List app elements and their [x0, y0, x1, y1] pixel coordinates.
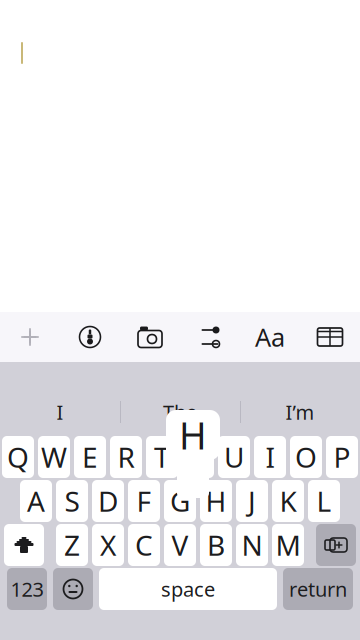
button[interactable]: Text format — [240, 312, 300, 362]
button[interactable]: E — [74, 436, 106, 478]
button[interactable]: J — [236, 480, 268, 522]
staticText: Aa — [255, 320, 285, 354]
staticText: I — [56, 399, 63, 425]
button[interactable]: F — [128, 480, 160, 522]
staticText: R — [117, 438, 134, 476]
button[interactable]: Q — [2, 436, 34, 478]
button[interactable]: X — [92, 524, 124, 566]
button[interactable]: O — [290, 436, 322, 478]
button[interactable]: G — [164, 480, 196, 522]
button[interactable]: space — [99, 568, 277, 610]
staticText: Q — [7, 438, 29, 476]
button[interactable]: B — [200, 524, 232, 566]
button[interactable]: C — [128, 524, 160, 566]
staticText: space — [161, 576, 215, 602]
button[interactable]: T — [146, 436, 178, 478]
staticText: H — [179, 410, 207, 460]
button[interactable]: P — [326, 436, 358, 478]
button[interactable]: Markup — [60, 312, 120, 362]
staticText: X — [100, 526, 116, 564]
button[interactable]: I — [0, 391, 120, 433]
button[interactable]: H — [200, 480, 232, 522]
staticText: J — [248, 482, 256, 520]
staticText: return — [289, 576, 347, 602]
staticText: U — [224, 438, 244, 476]
button[interactable]: V — [164, 524, 196, 566]
button[interactable]: L — [308, 480, 340, 522]
button[interactable]: I’m — [240, 391, 360, 433]
staticText: L — [316, 482, 331, 520]
button[interactable]: Camera — [120, 312, 180, 362]
staticText: E — [82, 438, 98, 476]
staticText: C — [135, 526, 153, 564]
staticText: W — [41, 438, 67, 476]
staticText: H — [205, 482, 226, 520]
staticText: I’m — [285, 399, 314, 425]
staticText: M — [275, 526, 300, 564]
button[interactable]: K — [272, 480, 304, 522]
button[interactable]: A — [20, 480, 52, 522]
button[interactable]: Close — [0, 312, 60, 362]
staticText: G — [170, 482, 190, 520]
button[interactable]: Options — [180, 312, 240, 362]
staticText: N — [241, 526, 262, 564]
staticText: F — [136, 482, 151, 520]
button[interactable]: M — [272, 524, 304, 566]
staticText: D — [98, 482, 118, 520]
button[interactable]: N — [236, 524, 268, 566]
staticText: K — [279, 482, 296, 520]
button[interactable]: Numbers — [7, 568, 47, 610]
staticText: P — [333, 438, 350, 476]
staticText: V — [171, 526, 188, 564]
staticText: O — [295, 438, 317, 476]
button[interactable]: Y — [182, 436, 214, 478]
staticText: B — [207, 526, 225, 564]
button[interactable]: Emoji — [53, 568, 93, 610]
button[interactable]: I — [254, 436, 286, 478]
staticText: A — [27, 482, 45, 520]
button[interactable]: W — [38, 436, 70, 478]
staticText: Z — [64, 526, 80, 564]
staticText: I — [265, 438, 274, 476]
button[interactable]: Z — [56, 524, 88, 566]
button[interactable]: Delete — [316, 524, 356, 566]
staticText: S — [64, 482, 79, 520]
button[interactable]: U — [218, 436, 250, 478]
button[interactable]: D — [92, 480, 124, 522]
staticText: 123 — [10, 576, 43, 602]
button[interactable]: R — [110, 436, 142, 478]
button[interactable]: Table — [300, 312, 360, 362]
button[interactable]: Return — [283, 568, 353, 610]
staticText: The — [163, 399, 197, 425]
staticText: T — [154, 438, 170, 476]
button[interactable]: Shift — [4, 524, 44, 566]
staticText: Y — [190, 438, 206, 476]
button[interactable]: The — [120, 391, 240, 433]
button[interactable]: S — [56, 480, 88, 522]
